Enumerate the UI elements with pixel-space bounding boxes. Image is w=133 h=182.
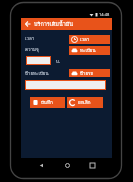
staticText: บันทึก (41, 99, 53, 106)
button[interactable]: ป้ายรถ (69, 69, 110, 77)
staticText: เวลา (25, 35, 35, 42)
staticText: เวลา (80, 36, 90, 43)
staticText: บริการเติมน้ำมัน (34, 20, 74, 29)
button[interactable]: เวลา (69, 35, 110, 44)
button[interactable]: ทะเบียน (69, 46, 110, 55)
staticText: 14:48 (99, 12, 110, 17)
button[interactable]: Back (36, 160, 46, 170)
button[interactable]: Back (24, 20, 32, 28)
staticText: ยกเลิก (78, 99, 91, 106)
staticText: ป้ายทะเบียน (25, 70, 49, 77)
button[interactable]: ยกเลิก (67, 97, 103, 108)
staticText: บ. (56, 58, 61, 65)
staticText: ทะเบียน (80, 47, 96, 54)
staticText: ป้ายรถ (80, 70, 94, 77)
button[interactable]: Recents (87, 160, 97, 170)
button[interactable]: Home (62, 160, 72, 170)
staticText: ความจุ (25, 46, 39, 53)
button[interactable]: บันทึก (30, 97, 65, 108)
